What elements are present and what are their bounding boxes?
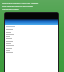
staticText: Full specifications and price — [2, 4, 33, 7]
staticText: Samsung Galaxy A52s 5G review — [2, 1, 39, 4]
staticText: Updated today — [2, 7, 19, 10]
button[interactable] — [5, 19, 58, 25]
